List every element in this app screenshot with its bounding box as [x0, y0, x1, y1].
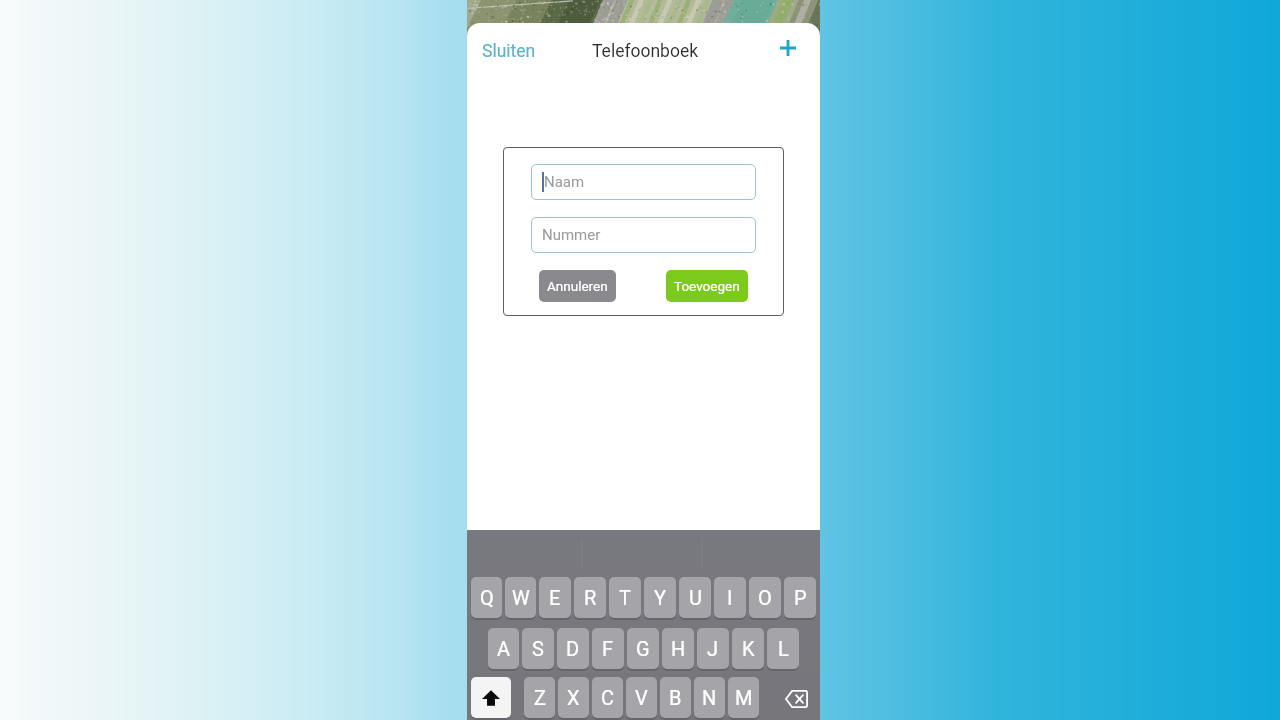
- staticText: I: [727, 586, 733, 609]
- button[interactable]: Toevoegen: [666, 270, 748, 302]
- button[interactable]: Q: [471, 577, 502, 618]
- button[interactable]: A: [488, 628, 519, 669]
- button[interactable]: Backspace: [776, 677, 816, 720]
- staticText: Naam: [544, 173, 585, 191]
- staticText: W: [512, 586, 530, 609]
- staticText: O: [758, 586, 772, 609]
- button[interactable]: J: [697, 628, 729, 669]
- button[interactable]: H: [662, 628, 694, 669]
- staticText: Z: [534, 686, 546, 709]
- staticText: Annuleren: [547, 278, 608, 294]
- button[interactable]: I: [714, 577, 746, 618]
- button[interactable]: U: [679, 577, 711, 618]
- staticText: S: [532, 637, 544, 660]
- staticText: Nummer: [542, 226, 601, 244]
- staticText: Q: [480, 586, 494, 609]
- staticText: N: [702, 686, 717, 709]
- button[interactable]: Y: [644, 577, 676, 618]
- button[interactable]: Sluiten: [475, 35, 543, 68]
- button[interactable]: F: [592, 628, 624, 669]
- staticText: Y: [654, 586, 667, 609]
- button[interactable]: V: [626, 677, 657, 718]
- button[interactable]: Nummer: [531, 217, 756, 253]
- staticText: K: [742, 637, 755, 660]
- button[interactable]: L: [767, 628, 799, 669]
- button[interactable]: M: [728, 677, 759, 718]
- staticText: V: [635, 686, 648, 709]
- staticText: E: [549, 586, 561, 609]
- button[interactable]: X: [558, 677, 589, 718]
- button[interactable]: D: [557, 628, 589, 669]
- button[interactable]: Z: [524, 677, 555, 718]
- button[interactable]: E: [539, 577, 571, 618]
- staticText: G: [636, 637, 650, 660]
- staticText: F: [602, 637, 614, 660]
- staticText: H: [671, 637, 686, 660]
- button[interactable]: B: [660, 677, 691, 718]
- button[interactable]: O: [749, 577, 781, 618]
- staticText: J: [707, 637, 719, 660]
- button[interactable]: Toevoegen: [774, 34, 802, 62]
- staticText: C: [601, 686, 615, 709]
- button[interactable]: P: [784, 577, 816, 618]
- button[interactable]: Naam: [531, 164, 756, 200]
- staticText: L: [778, 637, 789, 660]
- staticText: B: [669, 686, 682, 709]
- button[interactable]: Annuleren: [539, 270, 616, 302]
- staticText: Sluiten: [482, 41, 536, 62]
- staticText: T: [619, 586, 631, 609]
- staticText: X: [567, 686, 580, 709]
- button[interactable]: K: [732, 628, 764, 669]
- staticText: Toevoegen: [674, 278, 740, 294]
- button[interactable]: W: [505, 577, 536, 618]
- button[interactable]: R: [574, 577, 606, 618]
- staticText: M: [735, 686, 753, 709]
- button[interactable]: N: [694, 677, 725, 718]
- staticText: U: [689, 586, 702, 609]
- staticText: R: [584, 586, 597, 609]
- button[interactable]: T: [609, 577, 641, 618]
- button[interactable]: C: [592, 677, 623, 718]
- button[interactable]: G: [627, 628, 659, 669]
- button[interactable]: Shift: [471, 677, 511, 718]
- staticText: D: [566, 637, 580, 660]
- staticText: A: [497, 637, 511, 660]
- staticText: Telefoonboek: [592, 41, 699, 62]
- button[interactable]: S: [522, 628, 554, 669]
- staticText: P: [794, 586, 807, 609]
